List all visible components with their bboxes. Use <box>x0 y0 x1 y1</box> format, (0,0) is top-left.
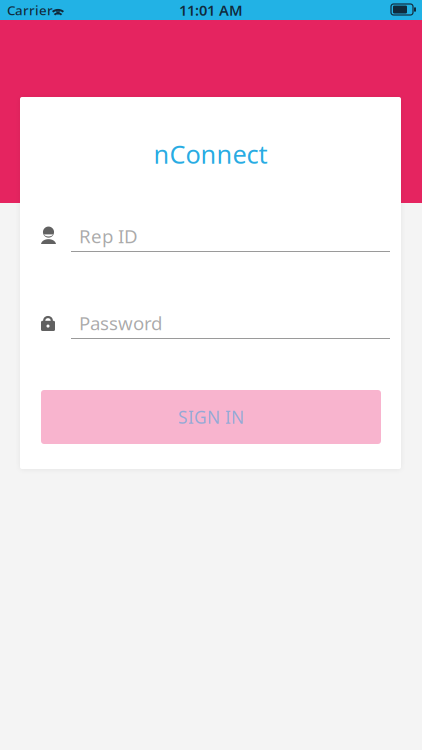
staticText: SIGN IN <box>178 405 244 428</box>
staticText: 11:01 AM <box>179 0 243 20</box>
staticText: Rep ID <box>79 224 138 248</box>
staticText: Password <box>79 311 162 335</box>
staticText: Carrier <box>7 1 53 19</box>
button[interactable]: SIGN IN <box>41 390 381 444</box>
staticText: nConnect <box>153 137 267 171</box>
